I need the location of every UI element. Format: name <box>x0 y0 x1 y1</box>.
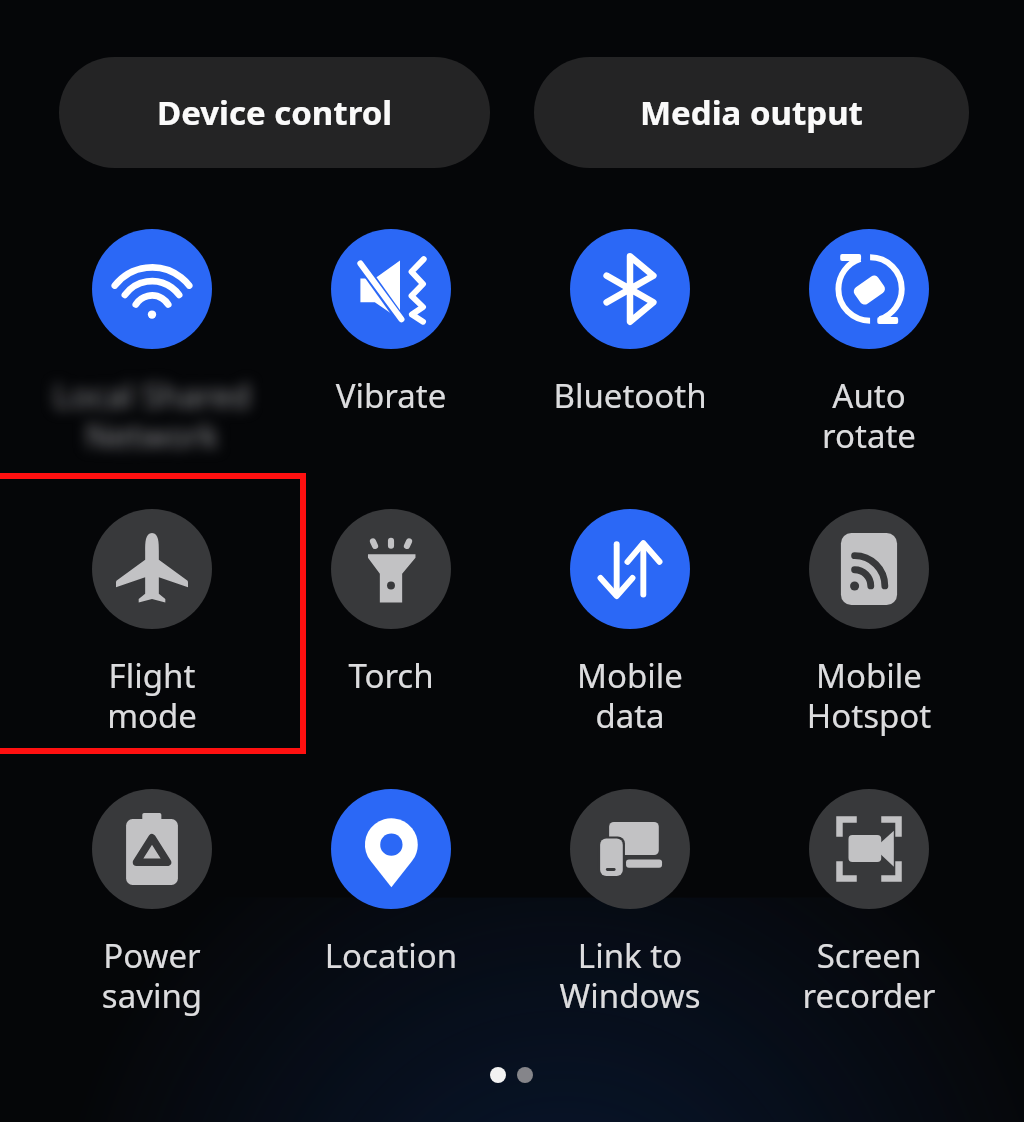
button[interactable]: Page 2 <box>517 1067 533 1083</box>
staticText: Torch <box>272 653 510 698</box>
staticText: Link to Windows <box>511 933 749 1018</box>
staticText: Auto rotate <box>750 373 988 458</box>
staticText: Screen recorder <box>750 933 988 1018</box>
button[interactable]: Flight mode <box>33 509 271 764</box>
staticText: Device control <box>157 90 393 135</box>
button[interactable]: Bluetooth <box>511 229 749 484</box>
button[interactable]: Power saving <box>33 789 271 1044</box>
button[interactable]: Device control <box>59 57 490 168</box>
button[interactable]: Screen recorder <box>750 789 988 1044</box>
staticText: Power saving <box>33 933 271 1018</box>
button[interactable]: Link to Windows <box>511 789 749 1044</box>
button[interactable]: Mobile Hotspot <box>750 509 988 764</box>
staticText: Media output <box>640 90 863 135</box>
button[interactable]: Location <box>272 789 510 1044</box>
button[interactable]: Auto rotate <box>750 229 988 484</box>
staticText: Local Shared Network <box>33 373 271 458</box>
button[interactable]: Mobile data <box>511 509 749 764</box>
staticText: Mobile Hotspot <box>750 653 988 738</box>
button[interactable]: Vibrate <box>272 229 510 484</box>
button[interactable]: Wi-Fi <box>33 229 271 484</box>
button[interactable]: Media output <box>534 57 969 168</box>
staticText: Flight mode <box>33 653 271 738</box>
button[interactable]: Page 1 <box>490 1067 506 1083</box>
staticText: Bluetooth <box>511 373 749 418</box>
button[interactable]: Torch <box>272 509 510 764</box>
staticText: Mobile data <box>511 653 749 738</box>
staticText: Location <box>272 933 510 978</box>
staticText: Vibrate <box>272 373 510 418</box>
